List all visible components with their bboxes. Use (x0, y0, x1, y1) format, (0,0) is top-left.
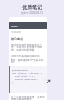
staticText: Spacer(Modifier) (12, 77, 38, 80)
staticText: fun Item(s: String) { (12, 71, 43, 74)
staticText: @Composable (12, 68, 28, 71)
staticText: Kotlin (11, 24, 18, 27)
staticText: 通过状态提升把数据放在上层，子组件只负责显示与回调，这样结构更清晰。 (11, 43, 45, 52)
staticText: 记得为列表项提供稳定的 key，避免重组时产生多余开销。 (11, 54, 45, 64)
staticText: 以上片段可直接复用，注意作用域与修饰符顺序。 (11, 95, 45, 100)
staticText: } (12, 80, 14, 83)
staticText: Text(text = s) (12, 74, 35, 77)
staticText: 更新于 2024-05-12 (21, 11, 43, 15)
staticText: 示例说明 (11, 31, 21, 34)
button[interactable]: Send (44, 77, 52, 85)
staticText: 优质笔记 (22, 4, 42, 10)
staticText: 核心要点 (11, 37, 23, 41)
